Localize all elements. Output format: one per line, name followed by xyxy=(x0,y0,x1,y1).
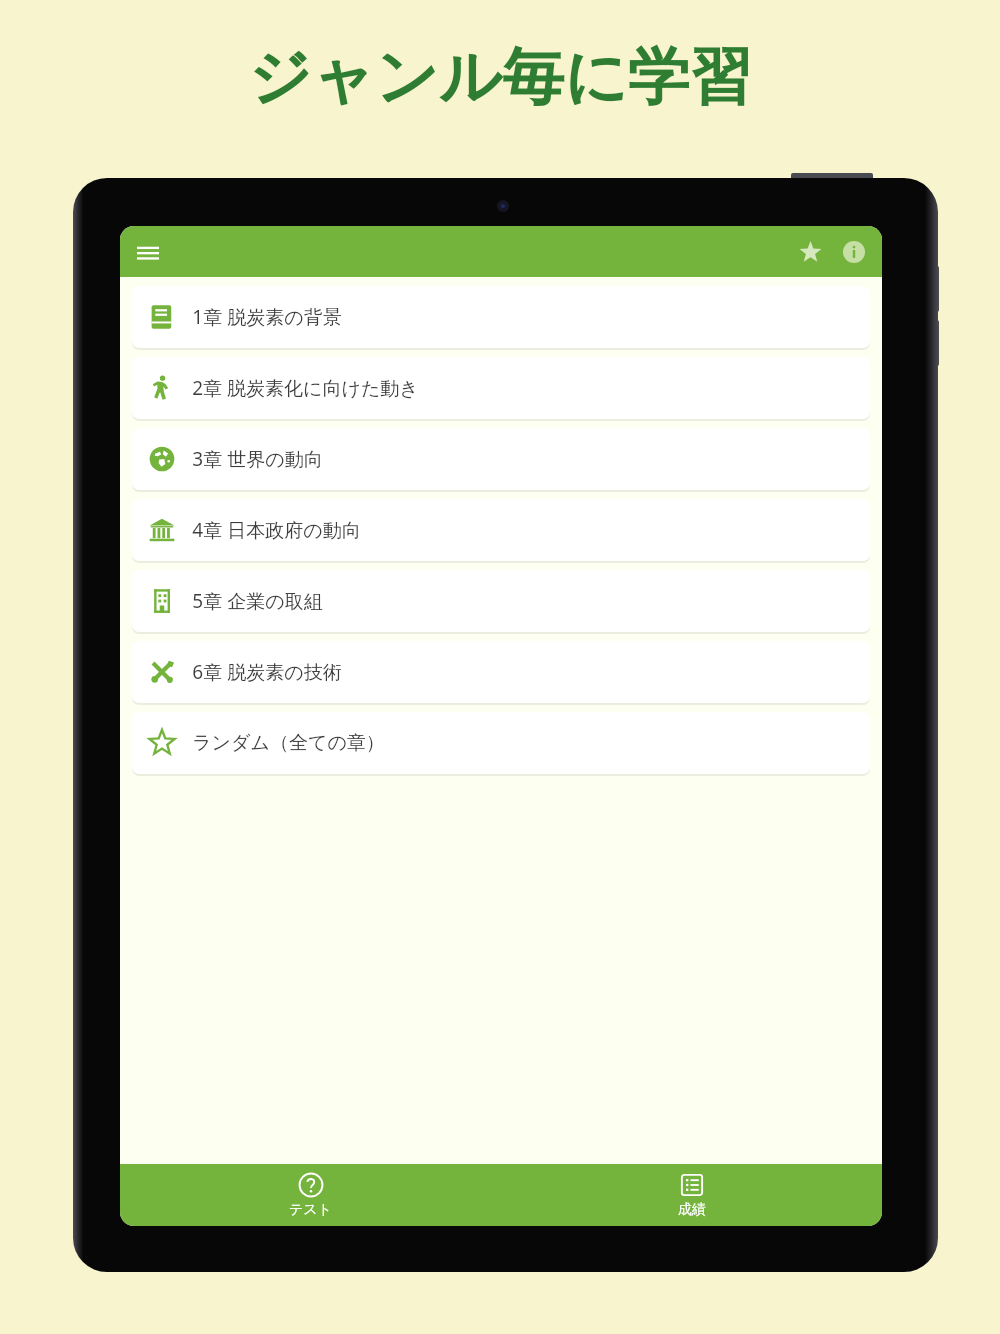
button[interactable]: ランダム（全ての章） xyxy=(132,712,870,774)
staticText: 1章 脱炭素の背景 xyxy=(192,304,342,330)
button[interactable]: 2章 脱炭素化に向けた動き xyxy=(132,357,870,419)
button[interactable]: Favorites xyxy=(790,232,830,272)
button[interactable]: テスト xyxy=(120,1164,501,1219)
staticText: ランダム（全ての章） xyxy=(192,731,385,755)
button[interactable]: 6章 脱炭素の技術 xyxy=(132,641,870,703)
staticText: 4章 日本政府の動向 xyxy=(192,517,361,543)
staticText: 5章 企業の取組 xyxy=(192,588,323,614)
button[interactable]: 3章 世界の動向 xyxy=(132,428,870,490)
staticText: ジャンル毎に学習 xyxy=(248,38,752,116)
button[interactable]: 5章 企業の取組 xyxy=(132,570,870,632)
button[interactable]: 4章 日本政府の動向 xyxy=(132,499,870,561)
staticText: 成績 xyxy=(678,1201,706,1219)
button[interactable]: 成績 xyxy=(501,1164,882,1219)
staticText: 2章 脱炭素化に向けた動き xyxy=(192,375,419,401)
button[interactable]: 1章 脱炭素の背景 xyxy=(132,286,870,348)
staticText: 3章 世界の動向 xyxy=(192,446,323,472)
button[interactable]: Menu xyxy=(128,232,168,272)
staticText: テスト xyxy=(289,1201,332,1219)
staticText: 6章 脱炭素の技術 xyxy=(192,659,342,685)
button[interactable]: Information xyxy=(834,232,874,272)
